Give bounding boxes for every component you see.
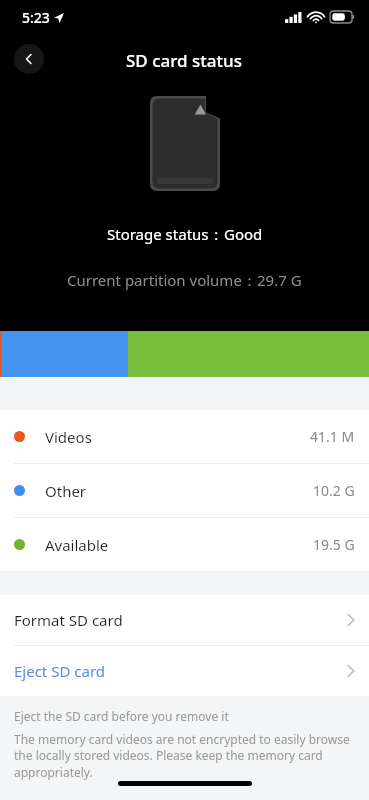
staticText: Current partition volume： bbox=[67, 270, 257, 290]
button[interactable]: Other bbox=[0, 464, 369, 518]
staticText: Available bbox=[45, 535, 109, 555]
button[interactable]: Back bbox=[14, 44, 44, 74]
staticText: 10.2 G bbox=[313, 481, 355, 500]
staticText: 41.1 M bbox=[310, 427, 355, 446]
staticText: Format SD card bbox=[14, 610, 123, 630]
staticText: Good bbox=[224, 224, 263, 244]
button[interactable]: Eject SD card bbox=[0, 646, 369, 696]
staticText: SD card status bbox=[126, 49, 243, 72]
staticText: Other bbox=[45, 481, 87, 501]
staticText: Eject the SD card before you remove it bbox=[14, 708, 229, 724]
staticText: Videos bbox=[45, 427, 92, 447]
button[interactable]: Available bbox=[0, 518, 369, 571]
button[interactable]: Videos bbox=[0, 410, 369, 464]
staticText: 5:23 bbox=[22, 8, 50, 27]
staticText: 29.7 G bbox=[257, 270, 302, 290]
button[interactable]: Format SD card bbox=[0, 595, 369, 646]
staticText: The memory card videos are not encrypted… bbox=[14, 731, 355, 781]
staticText: Storage status： bbox=[107, 224, 224, 244]
staticText: Eject SD card bbox=[14, 661, 106, 681]
staticText: 19.5 G bbox=[313, 535, 355, 554]
